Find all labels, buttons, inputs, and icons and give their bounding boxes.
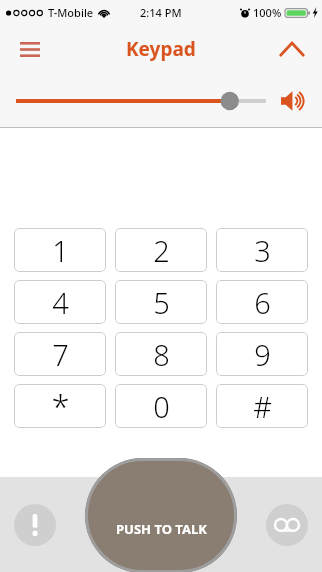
button[interactable]: PUSH TO TALK [85,458,237,572]
button[interactable]: # [216,384,308,428]
button[interactable]: Collapse [270,27,314,71]
staticText: 6 [254,283,271,322]
staticText: 3 [254,231,271,270]
button[interactable]: 4 [14,280,106,324]
button[interactable]: 2 [115,228,207,272]
staticText: * [51,384,70,428]
button[interactable]: 3 [216,228,308,272]
staticText: 2:14 PM [140,5,182,20]
button[interactable]: 7 [14,332,106,376]
button[interactable]: 9 [216,332,308,376]
button[interactable]: 5 [115,280,207,324]
staticText: 9 [254,335,271,374]
staticText: 2 [153,231,170,270]
staticText: Keypad [126,36,196,62]
staticText: 1 [52,231,69,270]
staticText: 100% [253,5,282,20]
button[interactable]: Menu [8,27,52,71]
button[interactable]: Volume [276,83,312,119]
staticText: PUSH TO TALK [116,520,207,538]
staticText: 4 [52,283,69,322]
button[interactable]: 1 [14,228,106,272]
staticText: # [253,387,272,426]
staticText: 5 [153,283,170,322]
button[interactable]: 6 [216,280,308,324]
button[interactable]: Alert [14,504,56,546]
staticText: 8 [153,335,170,374]
staticText: 0 [153,387,170,426]
button[interactable]: Voicemail [266,504,308,546]
button[interactable]: 8 [115,332,207,376]
staticText: 7 [52,335,69,374]
staticText: T-Mobile [48,5,94,20]
button[interactable]: * [14,384,106,428]
button[interactable] [16,87,266,115]
button[interactable]: 0 [115,384,207,428]
